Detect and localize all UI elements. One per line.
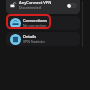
button[interactable]: Details [6, 32, 80, 46]
staticText: Details [23, 34, 37, 40]
button[interactable]: Toggle VPN [67, 3, 77, 8]
staticText: VPN Statistics [23, 39, 45, 44]
button[interactable]: Connections [6, 16, 80, 30]
other: Details [10, 34, 21, 45]
staticText: No connection [23, 23, 47, 28]
staticText: Connections [23, 18, 48, 24]
other: VPN unlocked [10, 2, 17, 9]
staticText: Disconnected [19, 5, 41, 10]
button[interactable]: VPN unlocked [6, 0, 80, 14]
staticText: AnyConnect VPN [19, 0, 52, 6]
other: Connections [10, 18, 21, 29]
